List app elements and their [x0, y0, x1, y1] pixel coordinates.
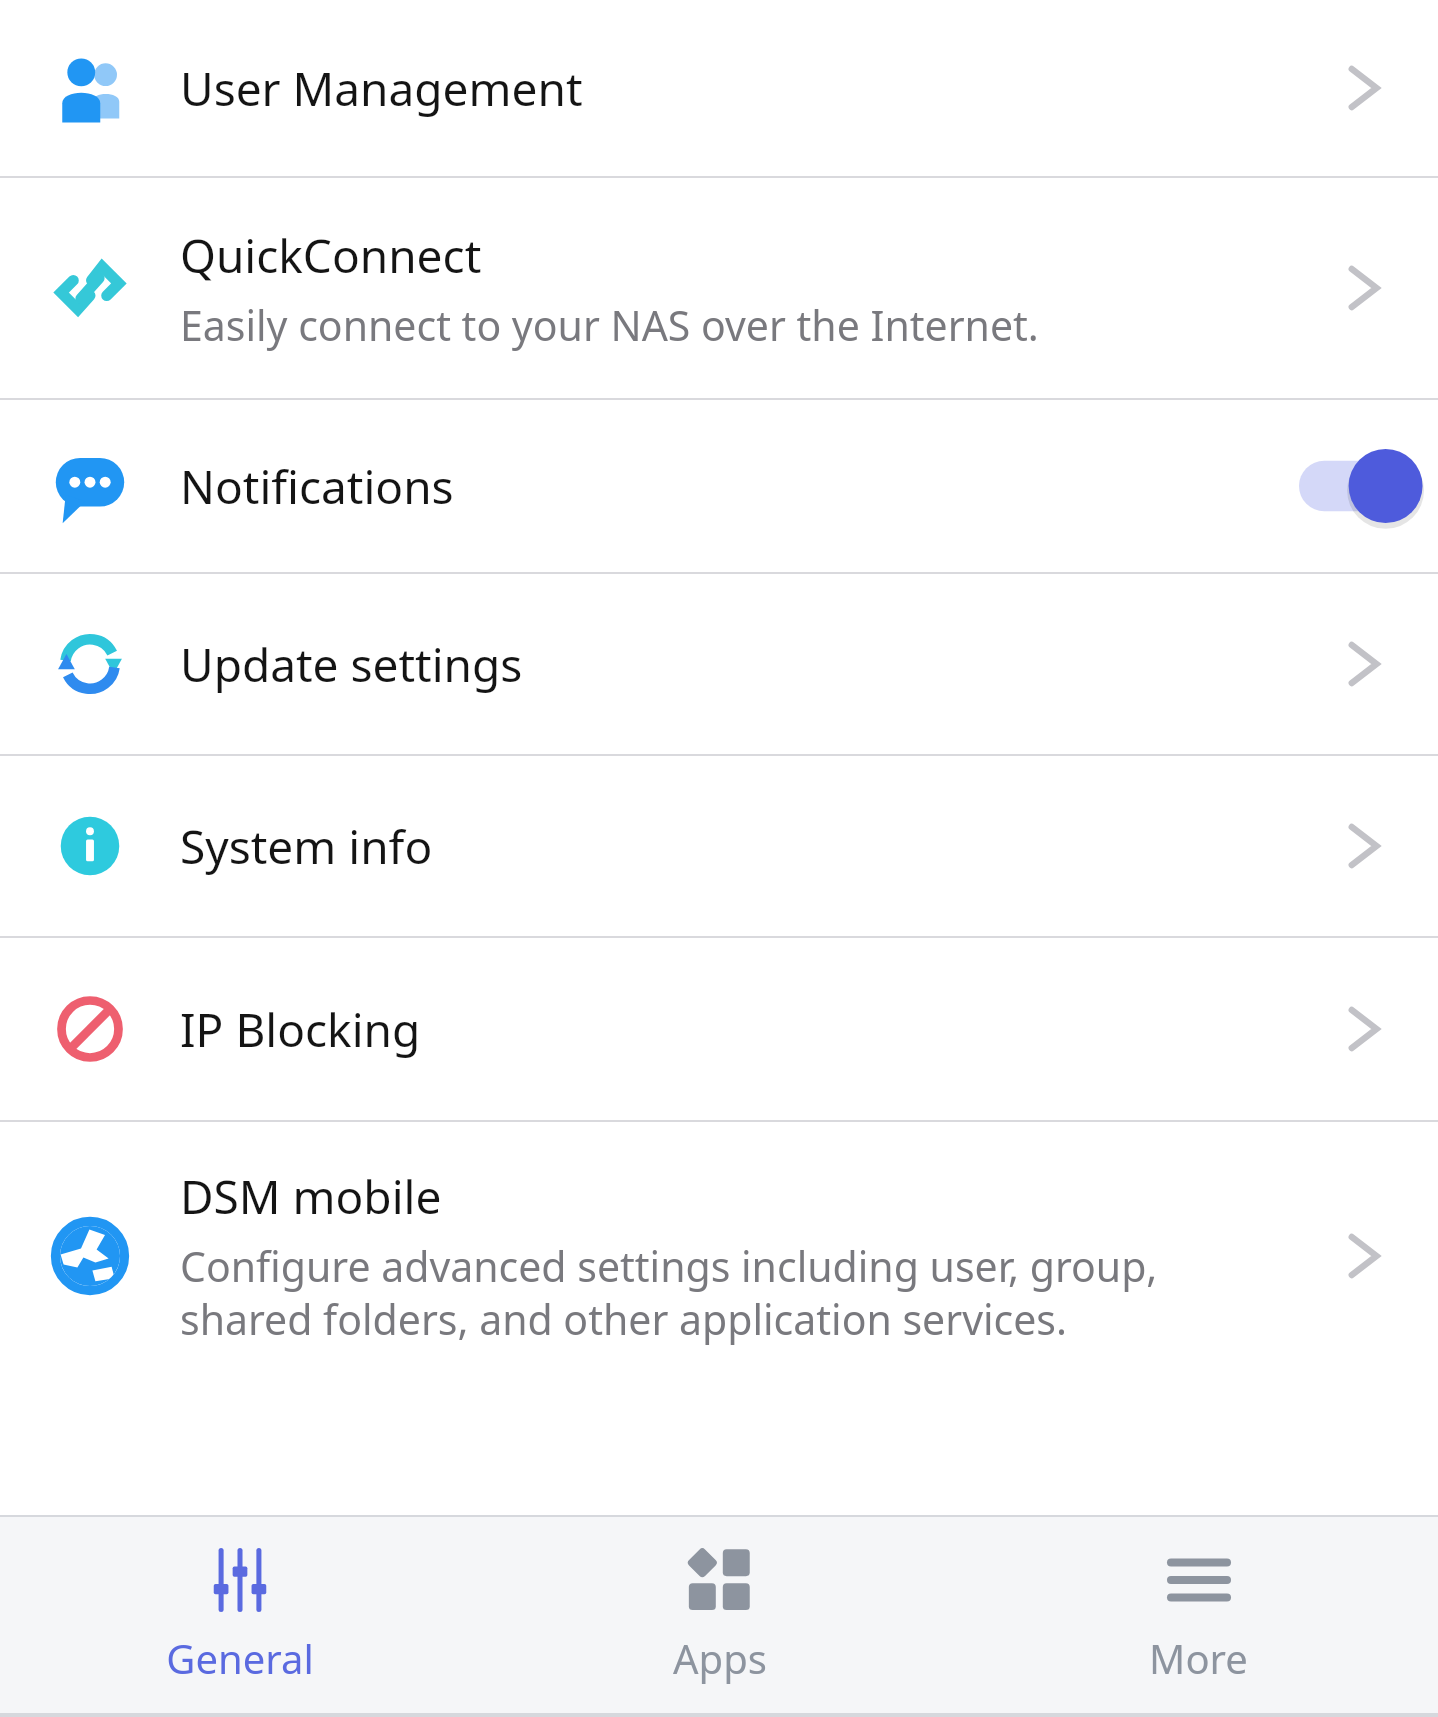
staticText: Apps	[673, 1631, 767, 1685]
button[interactable]: QuickConnect	[0, 178, 1438, 398]
button[interactable]: Update settings	[0, 574, 1438, 754]
button[interactable]: Notifications	[0, 400, 1438, 572]
staticText: Update settings	[180, 633, 523, 696]
staticText: Configure advanced settings including us…	[180, 1238, 1274, 1347]
staticText: QuickConnect	[180, 224, 482, 287]
button[interactable]: User Management	[0, 0, 1438, 176]
staticText: General	[166, 1631, 314, 1685]
staticText: IP Blocking	[180, 998, 421, 1061]
button[interactable]: IP Blocking	[0, 938, 1438, 1120]
button[interactable]: More	[959, 1517, 1438, 1713]
button[interactable]: System info	[0, 756, 1438, 936]
button[interactable]: DSM mobile	[0, 1122, 1438, 1390]
staticText: More	[1149, 1631, 1248, 1685]
staticText: System info	[180, 815, 433, 878]
staticText: DSM mobile	[180, 1165, 442, 1228]
button[interactable]: Toggle notifications	[1299, 444, 1427, 528]
staticText: Notifications	[180, 455, 454, 518]
staticText: User Management	[180, 57, 583, 120]
staticText: Easily connect to your NAS over the Inte…	[180, 297, 1039, 353]
button[interactable]: Apps	[480, 1517, 959, 1713]
button[interactable]: General	[0, 1517, 480, 1713]
